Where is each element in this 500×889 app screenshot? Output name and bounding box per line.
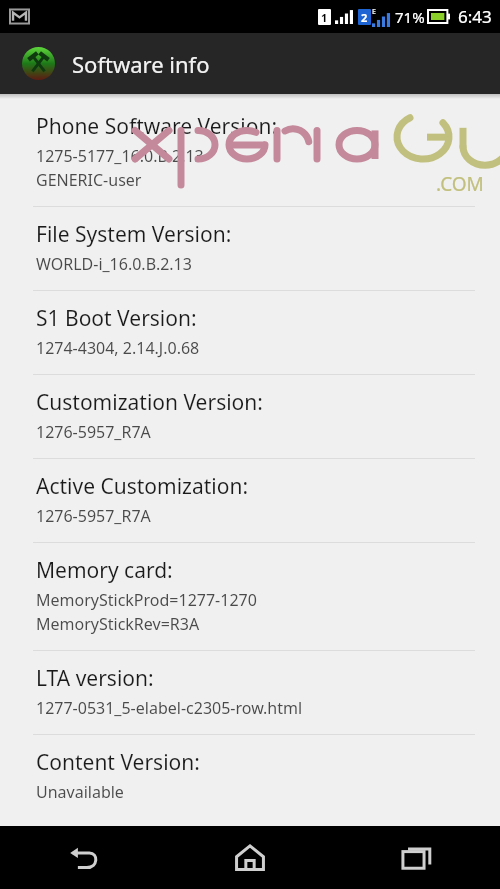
staticText: 71% [395, 7, 425, 27]
staticText: Software info [72, 49, 210, 79]
staticText: Customization Version: [36, 388, 263, 417]
staticText: Unavailable [36, 781, 124, 803]
staticText: WORLD-i_16.0.B.2.13 [36, 253, 192, 275]
staticText: MemoryStickRev=R3A [36, 613, 200, 635]
button[interactable]: Recent apps [333, 826, 500, 889]
button[interactable]: Software info [0, 33, 500, 94]
staticText: 1 [321, 10, 328, 25]
staticText: .COM [436, 171, 484, 197]
staticText: GENERIC-user [36, 169, 142, 191]
staticText: MemoryStickProd=1277-1270 [36, 589, 257, 611]
staticText: Phone Software Version: [36, 112, 278, 141]
staticText: 1276-5957_R7A [36, 505, 151, 527]
staticText: 6:43 [458, 5, 492, 28]
staticText: E [372, 7, 376, 17]
staticText: Active Customization: [36, 472, 249, 501]
button[interactable]: Home [166, 826, 333, 889]
button[interactable]: Customization Version: [0, 375, 500, 458]
button[interactable]: Back [0, 826, 166, 889]
button[interactable]: Phone Software Version: [0, 99, 500, 206]
staticText: Content Version: [36, 748, 200, 777]
button[interactable]: Content Version: [0, 735, 500, 818]
button[interactable]: File System Version: [0, 207, 500, 290]
button[interactable]: S1 Boot Version: [0, 291, 500, 374]
staticText: LTA version: [36, 664, 154, 693]
staticText: 1274-4304, 2.14.J.0.68 [36, 337, 200, 359]
staticText: Memory card: [36, 556, 173, 585]
staticText: S1 Boot Version: [36, 304, 197, 333]
staticText: 1275-5177_16.0.B.2.13 [36, 145, 204, 167]
button[interactable]: Memory card: [0, 543, 500, 650]
staticText: 1276-5957_R7A [36, 421, 151, 443]
button[interactable]: LTA version: [0, 651, 500, 734]
button[interactable]: Active Customization: [0, 459, 500, 542]
staticText: File System Version: [36, 220, 232, 249]
staticText: 2 [361, 10, 368, 25]
staticText: 1277-0531_5-elabel-c2305-row.html [36, 697, 303, 719]
